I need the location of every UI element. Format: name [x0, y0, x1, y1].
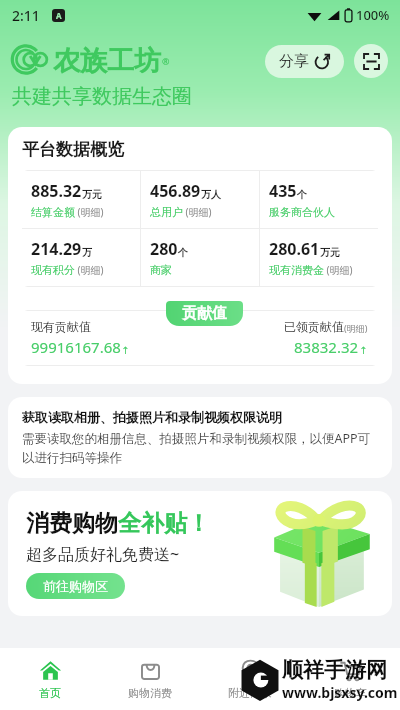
staticText: 83832.32 [294, 337, 359, 357]
button[interactable]: 购物车 [300, 648, 400, 710]
staticText: (明细) [75, 205, 104, 219]
staticText: 万人 [201, 188, 221, 201]
button[interactable]: 附近商家 [200, 648, 300, 710]
staticText: 280 [150, 238, 178, 260]
staticText: 个 [297, 188, 307, 201]
staticText: 服务商合伙人 [269, 205, 335, 219]
staticText: (明细) [75, 263, 104, 277]
staticText: 全补贴！ [118, 509, 210, 538]
button[interactable]: Scan [354, 44, 388, 78]
button[interactable]: 280.61 [260, 229, 378, 286]
button[interactable]: 消费购物 [8, 491, 392, 616]
staticText: 共建共享数据生态圈 [12, 84, 192, 109]
staticText: 购物消费 [128, 686, 172, 700]
staticText: 附近商家 [228, 686, 272, 700]
staticText: 100% [356, 6, 390, 24]
staticText: 现有贡献值 [31, 319, 91, 334]
staticText: 总用户 [150, 205, 183, 219]
staticText: 2:11 [12, 6, 40, 25]
staticText: 已领贡献值 [284, 319, 344, 334]
button[interactable]: 购物消费 [100, 648, 200, 710]
staticText: ↑ [359, 345, 368, 357]
button[interactable]: 280 [141, 229, 259, 286]
staticText: 435 [269, 180, 297, 202]
staticText: 现有消费金 [269, 263, 324, 277]
staticText: (明细) [344, 322, 368, 334]
staticText: 前往购物区 [43, 578, 108, 594]
staticText: 消费购物 [26, 509, 118, 538]
staticText: 顺祥手游网 [282, 657, 387, 683]
staticText: ↑ [121, 345, 130, 357]
button[interactable]: 现有贡献值 [22, 311, 200, 365]
button[interactable]: 分享 [265, 45, 344, 78]
staticText: 农族工坊 [53, 44, 161, 78]
staticText: 280.61 [269, 238, 320, 260]
staticText: 99916167.68 [31, 337, 121, 357]
button[interactable]: 456.89 [141, 171, 259, 228]
staticText: 超多品质好礼免费送~ [26, 543, 180, 565]
staticText: (明细) [324, 263, 353, 277]
staticText: ® [162, 55, 170, 67]
button[interactable]: 已领贡献值 [200, 311, 378, 365]
button[interactable]: 435 [260, 171, 378, 228]
staticText: 214.29 [31, 238, 82, 260]
staticText: 万元 [82, 188, 102, 201]
staticText: 结算金额 [31, 205, 75, 219]
button[interactable]: 214.29 [22, 229, 140, 286]
staticText: 分享 [279, 52, 309, 71]
staticText: 获取读取相册、拍摄照片和录制视频权限说明 [22, 409, 282, 425]
staticText: A [56, 10, 62, 21]
button[interactable]: 885.32 [22, 171, 140, 228]
staticText: 万 [82, 246, 92, 259]
staticText: 平台数据概览 [22, 139, 124, 160]
staticText: 购物车 [334, 686, 367, 700]
staticText: 现有积分 [31, 263, 75, 277]
staticText: 首页 [39, 686, 61, 700]
staticText: 商家 [150, 263, 172, 277]
staticText: 个 [178, 246, 188, 259]
staticText: (明细) [183, 205, 212, 219]
button[interactable]: 首页 [0, 648, 100, 710]
staticText: 万元 [320, 246, 340, 259]
staticText: 需要读取您的相册信息、拍摄照片和录制视频权限，以便APP可以进行扫码等操作 [22, 430, 378, 466]
button[interactable]: 前往购物区 [26, 573, 125, 599]
staticText: 贡献值 [182, 304, 227, 323]
staticText: www.bjsxsy.com [282, 683, 398, 702]
staticText: 456.89 [150, 180, 201, 202]
staticText: 885.32 [31, 180, 82, 202]
